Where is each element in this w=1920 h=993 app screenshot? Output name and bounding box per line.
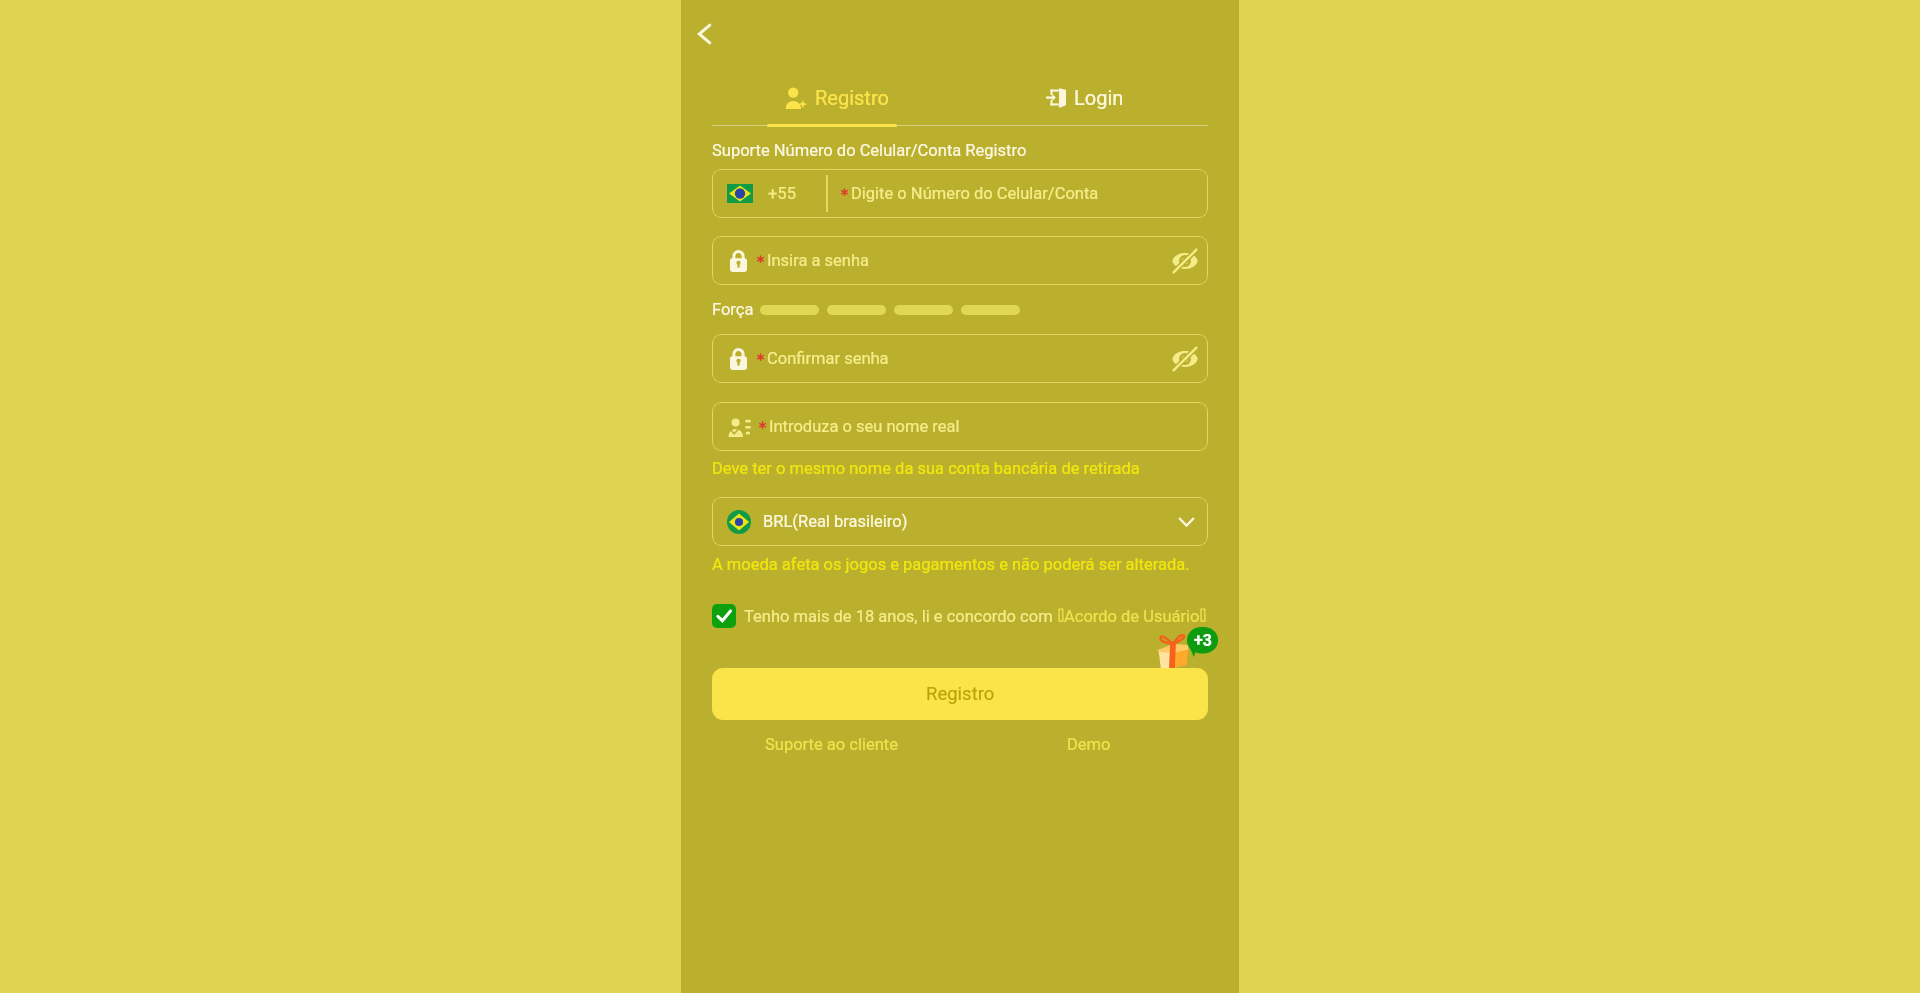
staticText: Deve ter o mesmo nome da sua conta bancá… bbox=[712, 459, 1140, 478]
staticText: Registro bbox=[815, 86, 889, 109]
staticText: Tenho mais de 18 anos, li e concordo com bbox=[744, 607, 1053, 626]
staticText: Login bbox=[1074, 86, 1124, 109]
staticText: Insira a senha bbox=[767, 251, 869, 270]
staticText: A moeda afeta os jogos e pagamentos e nã… bbox=[712, 555, 1190, 574]
staticText: Demo bbox=[1067, 735, 1111, 754]
staticText: Suporte Número do Celular/Conta Registro bbox=[712, 141, 1027, 160]
button[interactable]: Show password bbox=[1170, 246, 1200, 276]
button[interactable]: Demo bbox=[1057, 730, 1121, 758]
button[interactable]: Confirmar senha bbox=[712, 334, 1208, 383]
button[interactable]: Login bbox=[960, 76, 1208, 118]
button[interactable]: Suporte ao cliente bbox=[761, 730, 902, 758]
staticText: Acordo de Usuário bbox=[1064, 607, 1200, 626]
button[interactable]: Registro bbox=[712, 76, 960, 118]
button[interactable]: Back bbox=[684, 13, 726, 55]
staticText: Digite o Número do Celular/Conta bbox=[851, 184, 1099, 203]
button[interactable]: +55 bbox=[712, 169, 1208, 218]
button[interactable]: Select currency bbox=[1172, 508, 1200, 536]
button[interactable]: Registro bbox=[712, 668, 1208, 720]
staticText: +3 bbox=[1194, 631, 1212, 650]
button[interactable]: Show password bbox=[1170, 344, 1200, 374]
staticText: Suporte ao cliente bbox=[765, 735, 898, 754]
button[interactable]: Introduza o seu nome real bbox=[712, 402, 1208, 451]
staticText: BRL(Real brasileiro) bbox=[763, 512, 908, 531]
staticText: +55 bbox=[768, 184, 796, 203]
staticText: Força bbox=[712, 300, 754, 319]
staticText: Introduza o seu nome real bbox=[769, 417, 960, 436]
button[interactable]: BRL(Real brasileiro) bbox=[712, 497, 1208, 546]
staticText: Confirmar senha bbox=[767, 349, 889, 368]
button[interactable]: Insira a senha bbox=[712, 236, 1208, 285]
button[interactable]: Tenho mais de 18 anos, li e concordo com bbox=[712, 604, 1206, 628]
staticText: Registro bbox=[926, 683, 995, 705]
